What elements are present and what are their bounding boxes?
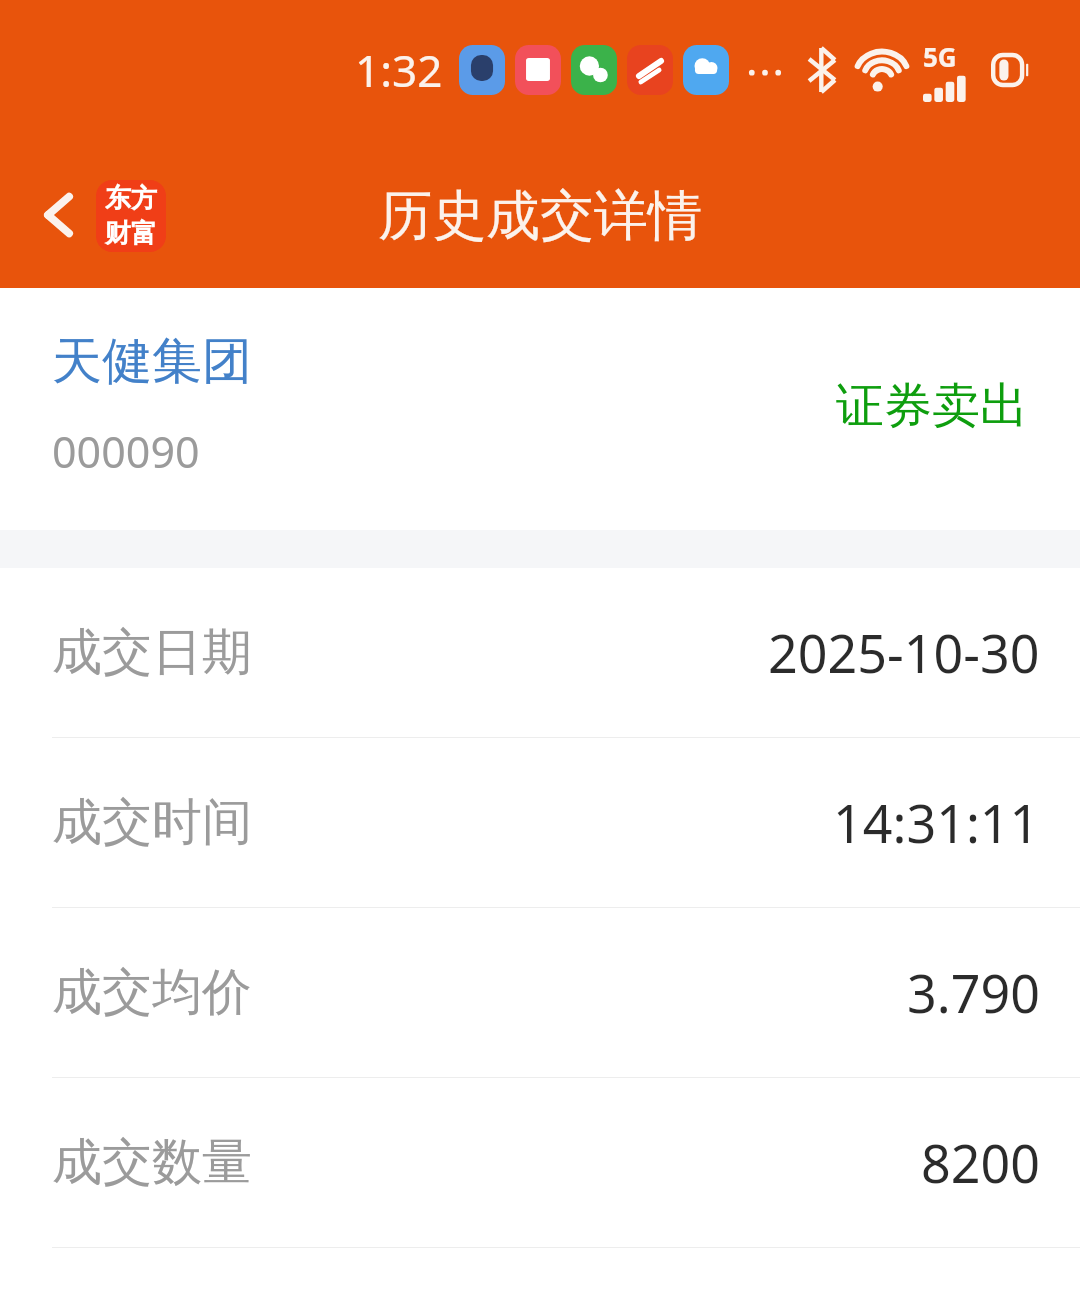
staticText: 1:32 bbox=[355, 40, 443, 100]
staticText: 成交数量 bbox=[52, 1131, 252, 1194]
staticText: 14:31:11 bbox=[833, 787, 1040, 858]
button[interactable]: Back bbox=[20, 176, 98, 254]
staticText: 2025-10-30 bbox=[768, 617, 1040, 688]
staticText: 5G bbox=[923, 39, 957, 74]
staticText: 证券卖出 bbox=[836, 376, 1028, 436]
staticText: 成交时间 bbox=[52, 791, 252, 854]
button[interactable]: 成交时间 bbox=[0, 738, 1080, 907]
staticText: 成交日期 bbox=[52, 621, 252, 684]
button[interactable]: 成交日期 bbox=[0, 568, 1080, 737]
staticText: 财富 bbox=[105, 217, 157, 250]
staticText: 成交均价 bbox=[52, 961, 252, 1024]
staticText: 历史成交详情 bbox=[378, 182, 702, 250]
staticText: 天健集团 bbox=[52, 330, 252, 393]
staticText: 3.790 bbox=[907, 957, 1040, 1028]
button[interactable]: 东方财富 bbox=[96, 180, 166, 252]
staticText: 000090 bbox=[52, 422, 200, 481]
button[interactable]: 成交数量 bbox=[0, 1078, 1080, 1247]
staticText: 东方 bbox=[105, 182, 157, 215]
staticText: 8200 bbox=[921, 1127, 1040, 1198]
button[interactable]: 成交均价 bbox=[0, 908, 1080, 1077]
